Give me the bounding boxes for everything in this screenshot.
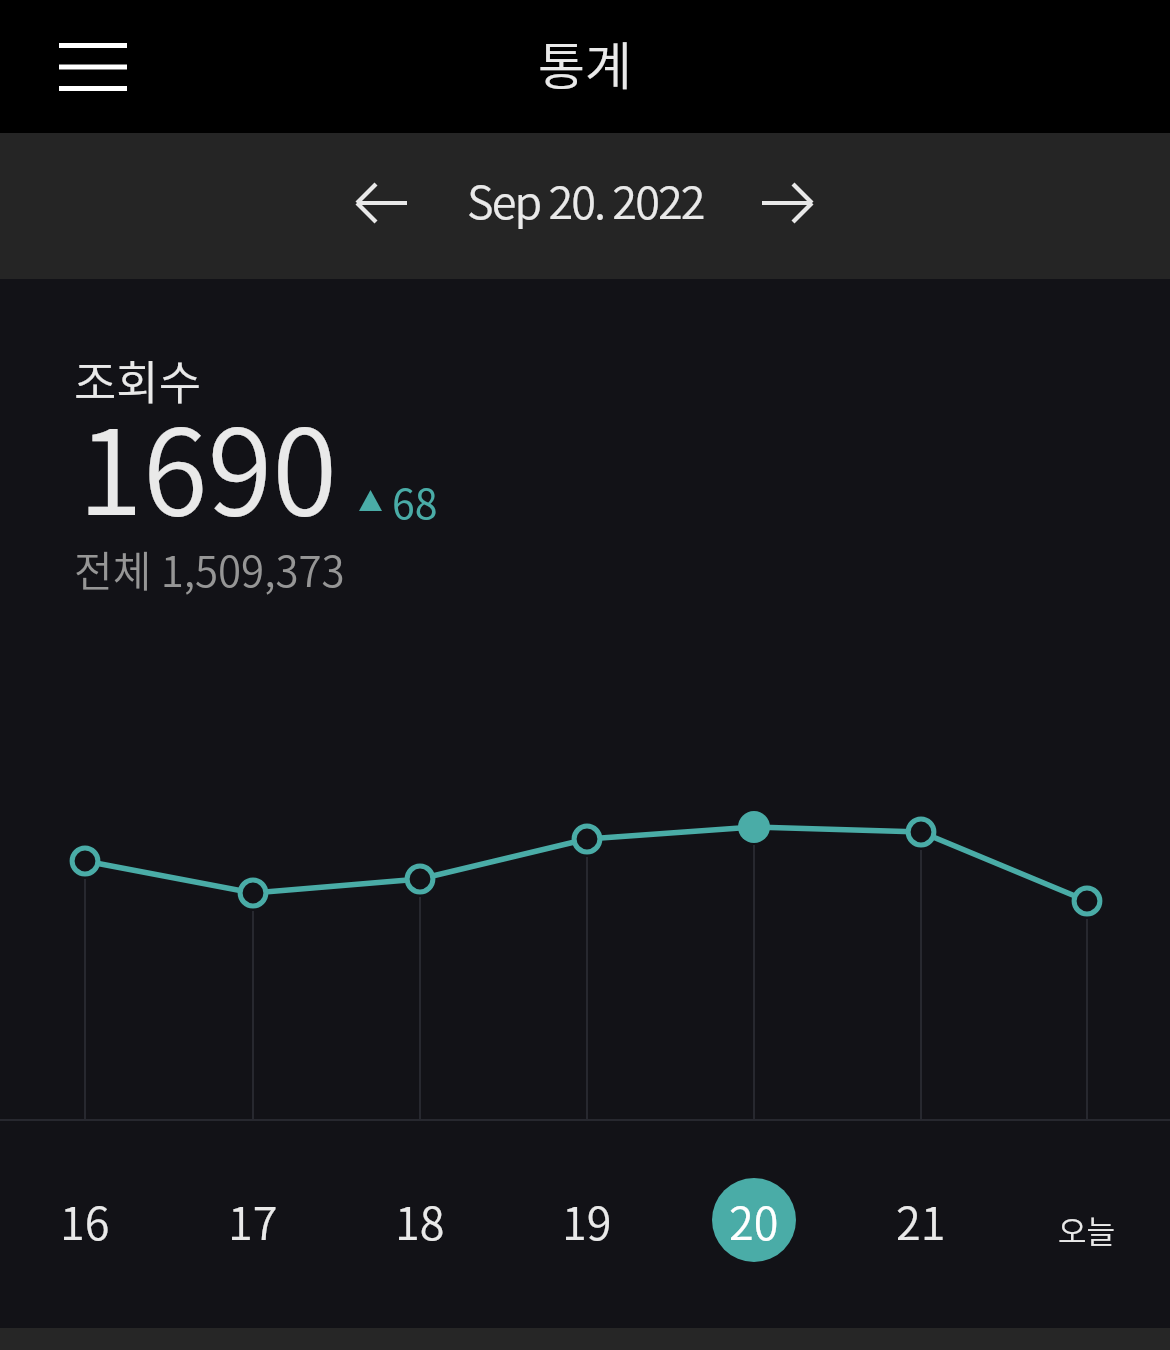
staticText: 21 (896, 1188, 946, 1253)
staticText: 오늘 (1058, 1207, 1116, 1252)
button[interactable]: 19 (533, 1166, 641, 1274)
button[interactable]: Next day (737, 153, 837, 253)
staticText: 68 (392, 471, 438, 530)
button[interactable]: Previous day (332, 153, 432, 253)
staticText: 19 (562, 1188, 612, 1253)
staticText: 18 (395, 1188, 445, 1253)
staticText: 17 (228, 1188, 278, 1253)
button[interactable]: 17 (199, 1166, 307, 1274)
button[interactable]: 오늘 (1033, 1166, 1141, 1274)
staticText: 전체 1,509,373 (74, 538, 345, 599)
button[interactable]: Menu (43, 17, 143, 117)
button[interactable]: 16 (31, 1166, 139, 1274)
staticText: Sep 20. 2022 (467, 167, 704, 232)
button[interactable]: 20 (700, 1166, 808, 1274)
staticText: 20 (729, 1188, 779, 1253)
button[interactable]: 21 (867, 1166, 975, 1274)
button[interactable]: 18 (366, 1166, 474, 1274)
staticText: 통계 (538, 26, 632, 100)
staticText: 1690 (78, 378, 338, 549)
staticText: 16 (60, 1188, 110, 1253)
staticText: 조회수 (74, 346, 201, 413)
